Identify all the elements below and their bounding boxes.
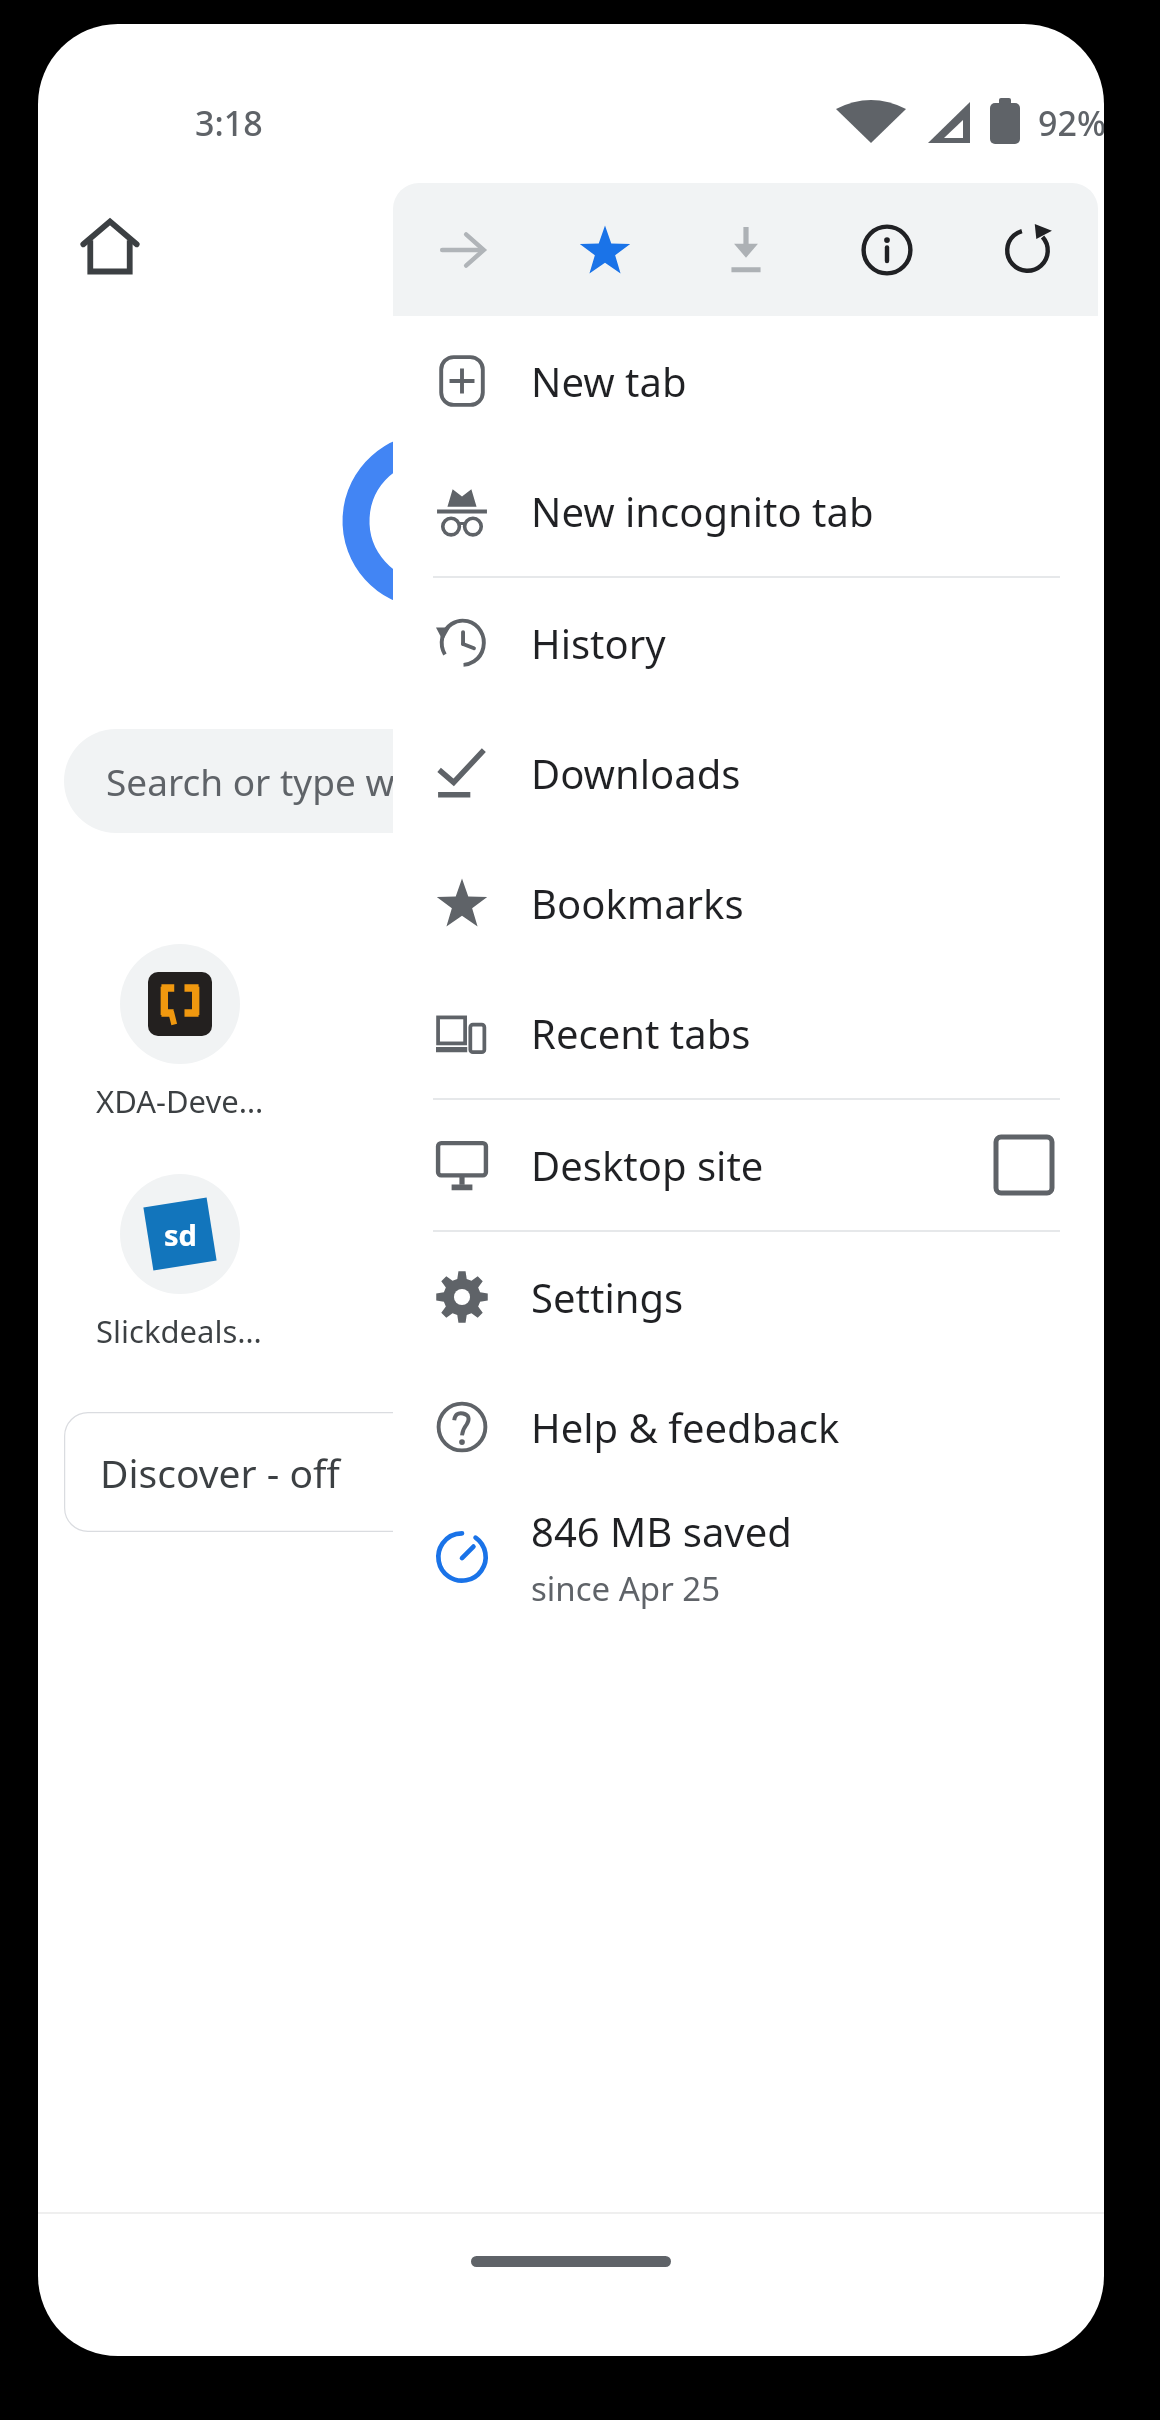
- staticText: sd: [164, 1215, 197, 1254]
- button[interactable]: Search or type web address: [64, 729, 784, 833]
- staticText: Downloads: [531, 746, 741, 800]
- button[interactable]: Desktop site: [393, 1100, 1098, 1230]
- button[interactable]: sd: [96, 1174, 264, 1352]
- staticText: Bookmarks: [531, 876, 744, 930]
- staticText: New tab: [531, 354, 687, 408]
- button[interactable]: Bookmarks: [393, 838, 1098, 968]
- staticText: Desktop site: [531, 1138, 764, 1192]
- button[interactable]: Home gesture handle: [471, 2256, 671, 2267]
- staticText: 846 MB saved: [531, 1504, 792, 1558]
- button[interactable]: Recent tabs: [393, 968, 1098, 1098]
- button[interactable]: Forward: [393, 183, 534, 316]
- button[interactable]: Help & feedback: [393, 1362, 1098, 1492]
- staticText: Help & feedback: [531, 1400, 840, 1454]
- staticText: Recent tabs: [531, 1006, 751, 1060]
- button[interactable]: XDA-Develo…: [96, 944, 264, 1122]
- button[interactable]: Home: [60, 196, 160, 296]
- button[interactable]: New incognito tab: [393, 446, 1098, 576]
- staticText: Slickdeals: …: [96, 1310, 264, 1352]
- button[interactable]: Discover - off: [64, 1412, 754, 1532]
- staticText: XDA-Develo…: [96, 1080, 264, 1122]
- staticText: since Apr 25: [531, 1566, 721, 1611]
- button[interactable]: 846 MB saved: [393, 1492, 1098, 1622]
- button[interactable]: Page info: [816, 183, 957, 316]
- staticText: History: [531, 616, 666, 670]
- staticText: Settings: [531, 1270, 684, 1324]
- button[interactable]: New tab: [393, 316, 1098, 446]
- button[interactable]: Settings: [393, 1232, 1098, 1362]
- staticText: Search or type web address: [106, 756, 585, 806]
- staticText: Discover - off: [100, 1446, 340, 1499]
- button[interactable]: Bookmark this page: [534, 183, 675, 316]
- staticText: New incognito tab: [531, 484, 874, 538]
- button[interactable]: Reload: [957, 183, 1098, 316]
- button[interactable]: Downloads: [393, 708, 1098, 838]
- button[interactable]: Download page: [675, 183, 816, 316]
- button[interactable]: Desktop site checkbox: [996, 1137, 1052, 1193]
- button[interactable]: History: [393, 578, 1098, 708]
- staticText: 92%: [1038, 100, 1104, 146]
- staticText: 3:18: [195, 100, 263, 146]
